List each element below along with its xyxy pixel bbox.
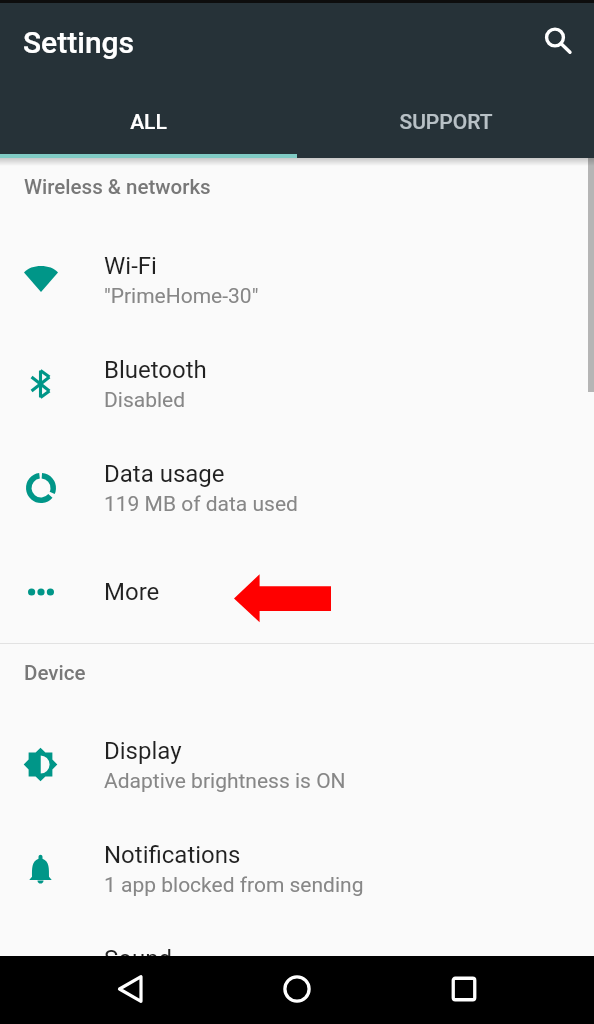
staticText: 119 MB of data used [104, 492, 298, 517]
button[interactable]: More [0, 540, 594, 644]
staticText: Device [24, 661, 86, 685]
staticText: More [104, 578, 160, 606]
staticText: Wi-Fi [104, 252, 157, 280]
button[interactable]: Display [0, 713, 594, 817]
staticText: ALL [130, 110, 167, 135]
button[interactable]: Data usage [0, 436, 594, 540]
button[interactable]: Notifications [0, 817, 594, 921]
staticText: Wireless & networks [24, 175, 211, 199]
staticText: Bluetooth [104, 356, 207, 384]
staticText: Sound [104, 945, 172, 973]
staticText: Disabled [104, 388, 186, 413]
button[interactable]: Sound [0, 921, 594, 1024]
staticText: Display [104, 737, 182, 765]
button[interactable]: Search [535, 18, 575, 58]
button[interactable]: Bluetooth [0, 332, 594, 436]
button[interactable]: Back [101, 959, 161, 1019]
staticText: Ringtone volume at 40% [104, 977, 328, 1002]
staticText: Data usage [104, 460, 225, 488]
button[interactable]: Home [267, 959, 327, 1019]
staticText: SUPPORT [399, 110, 493, 135]
staticText: Adaptive brightness is ON [104, 769, 346, 794]
button[interactable]: SUPPORT [297, 91, 594, 153]
button[interactable]: ALL [0, 91, 297, 153]
staticText: 1 app blocked from sending [104, 873, 364, 898]
staticText: Notifications [104, 841, 241, 869]
staticText: Settings [23, 25, 135, 60]
staticText: "PrimeHome-30" [104, 284, 259, 309]
button[interactable]: Wi-Fi [0, 228, 594, 332]
button[interactable]: Recent apps [434, 959, 494, 1019]
